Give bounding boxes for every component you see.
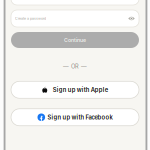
- button[interactable]: Create a password: [11, 10, 139, 27]
- button[interactable]: Sign up with Apple: [11, 81, 139, 98]
- button[interactable]: Continue: [11, 32, 139, 48]
- button[interactable]: Sign up with Facebook: [11, 109, 139, 126]
- staticText: Sign up with Facebook: [47, 114, 112, 121]
- staticText: Create a password: [15, 16, 46, 21]
- staticText: Continue: [64, 37, 86, 43]
- staticText: — OR —: [63, 63, 87, 70]
- staticText: Sign up with Apple: [53, 86, 108, 93]
